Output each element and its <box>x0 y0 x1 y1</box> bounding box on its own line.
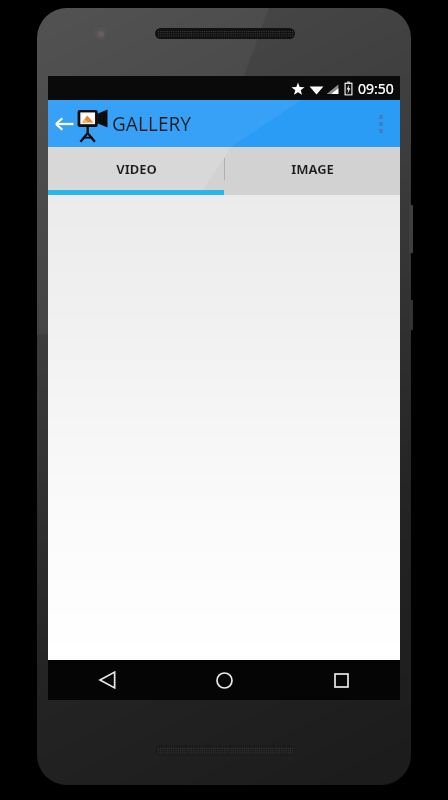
staticText: 09:50 <box>358 79 394 98</box>
button[interactable]: Back <box>48 660 166 700</box>
staticText: IMAGE <box>291 160 334 178</box>
button[interactable]: More options <box>362 100 400 147</box>
button[interactable]: Recent apps <box>283 660 400 700</box>
staticText: VIDEO <box>116 160 157 178</box>
staticText: GALLERY <box>112 111 192 137</box>
button[interactable]: IMAGE <box>224 147 400 190</box>
button[interactable]: Home <box>166 660 283 700</box>
button[interactable]: VIDEO <box>48 147 224 190</box>
button[interactable]: Navigate up <box>51 104 77 144</box>
